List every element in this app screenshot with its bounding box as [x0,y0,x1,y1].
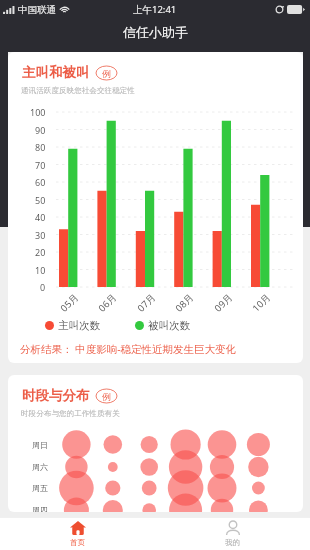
staticText: 05月 [57,290,81,314]
staticText: 我的 [225,538,240,547]
staticText: 分析结果： 中度影响-稳定性近期发生巨大变化 [20,342,237,356]
staticText: 周日 [32,440,48,450]
staticText: 上午12:41 [133,3,177,16]
staticText: 08月 [172,290,196,314]
staticText: 信任小助手 [123,24,188,40]
staticText: 通讯活跃度反映您社会交往稳定性 [21,86,135,96]
staticText: 例 [102,391,111,402]
staticText: 0 [40,281,46,293]
staticText: 例 [102,68,111,79]
staticText: 10月 [249,290,273,314]
staticText: 60 [35,176,46,188]
staticText: 50 [35,194,46,206]
staticText: 90 [35,124,46,136]
staticText: 30 [35,229,46,241]
staticText: 09月 [211,290,235,314]
staticText: 100 [30,106,46,118]
staticText: 中国联通 [18,4,56,16]
staticText: 10 [35,264,46,276]
staticText: 周六 [32,462,48,472]
staticText: 主叫和被叫 [22,64,90,81]
staticText: 40 [35,211,46,223]
button[interactable]: 首页 [0,517,155,550]
staticText: 主叫次数 [58,319,100,332]
button[interactable]: 我的 [155,517,310,550]
staticText: 70 [35,159,46,171]
staticText: 20 [35,246,46,258]
staticText: 80 [35,141,46,153]
staticText: 时段与分布 [22,387,90,404]
staticText: 07月 [134,290,158,314]
staticText: 周五 [32,483,48,493]
staticText: 周四 [32,505,48,512]
staticText: 首页 [70,538,85,547]
staticText: 被叫次数 [148,319,190,332]
staticText: 06月 [95,290,119,314]
staticText: 时段分布与您的工作性质有关 [21,409,120,419]
